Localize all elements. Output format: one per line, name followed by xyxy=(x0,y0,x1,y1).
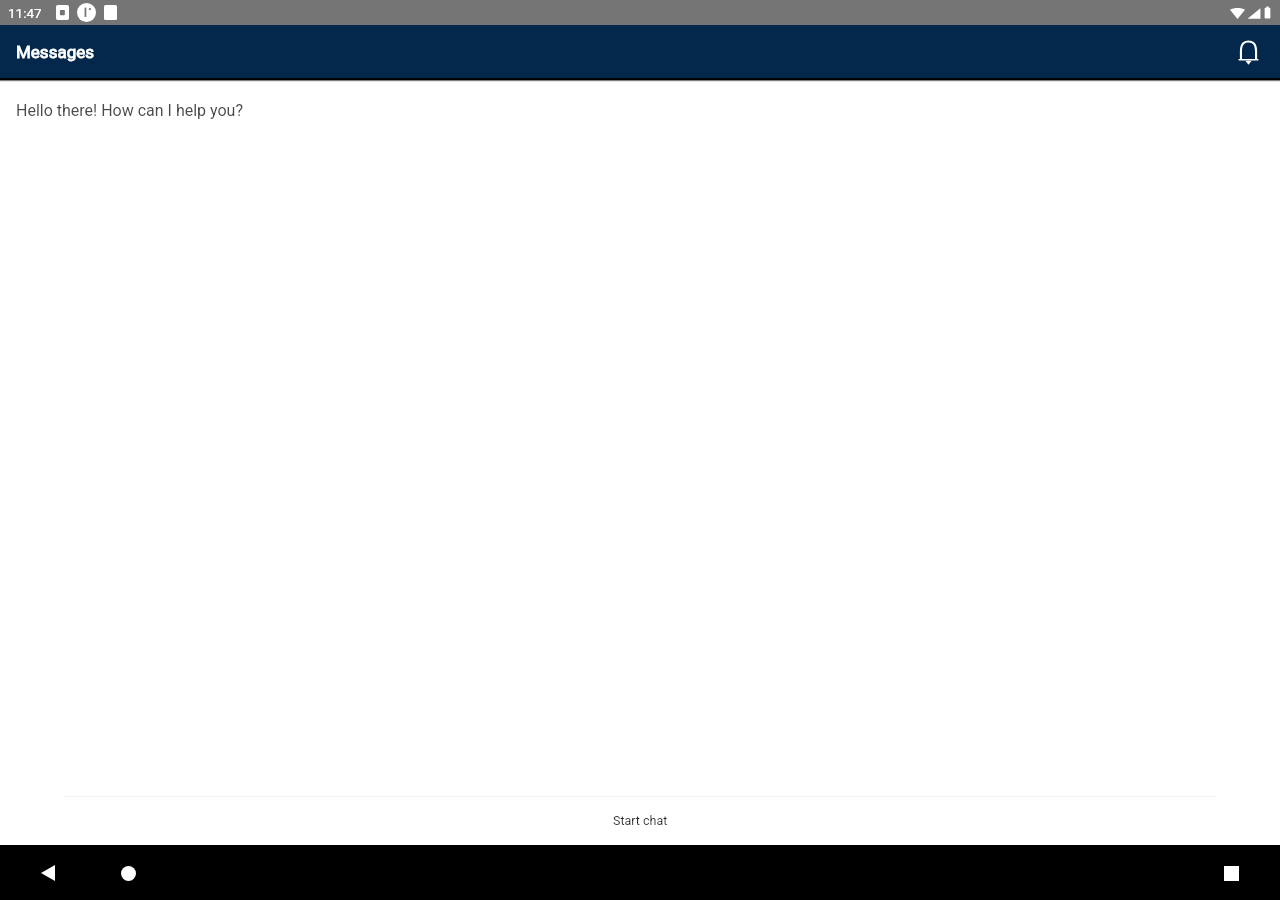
button[interactable]: Back xyxy=(29,854,67,892)
staticText: Hello there! How can I help you? xyxy=(16,101,243,120)
button[interactable]: Recent apps xyxy=(1212,854,1250,892)
staticText: Start chat xyxy=(613,813,668,828)
button[interactable]: Start chat xyxy=(597,805,684,836)
staticText: 11:47 xyxy=(8,5,42,21)
button[interactable]: Notifications xyxy=(1229,33,1267,71)
button[interactable]: Home xyxy=(109,854,147,892)
staticText: Messages xyxy=(16,42,94,62)
